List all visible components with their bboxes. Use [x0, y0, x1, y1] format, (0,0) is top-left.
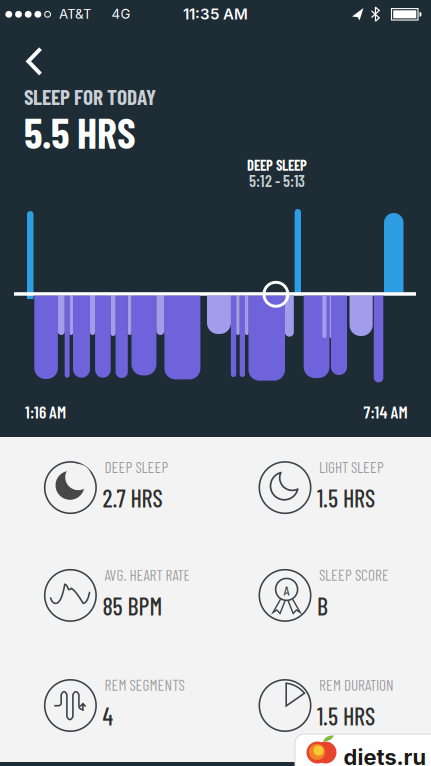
staticText: DEEP SLEEP	[247, 156, 307, 174]
staticText: SLEEP FOR TODAY	[24, 84, 156, 109]
staticText: REM DURATION	[319, 675, 394, 694]
staticText: diets.ru	[343, 744, 426, 766]
staticText: 5:12 - 5:13	[249, 171, 305, 190]
staticText: 1:16 AM	[25, 402, 66, 422]
staticText: 5.5 HRS	[24, 107, 136, 157]
staticText: A	[284, 582, 290, 598]
staticText: 2.7 HRS	[102, 484, 162, 512]
staticText: LIGHT SLEEP	[319, 458, 384, 476]
staticText: AVG. HEART RATE	[104, 565, 190, 584]
staticText: 4	[102, 701, 113, 730]
staticText: AT&T	[59, 6, 92, 22]
staticText: 1.5 HRS	[317, 701, 375, 730]
staticText: 4G	[111, 6, 130, 22]
staticText: 7:14 AM	[363, 402, 407, 422]
staticText: DEEP SLEEP	[104, 458, 168, 476]
staticText: REM SEGMENTS	[104, 675, 184, 694]
staticText: 1.5 HRS	[317, 484, 375, 512]
button[interactable]	[12, 39, 56, 83]
staticText: SLEEP SCORE	[319, 565, 389, 584]
staticText: B	[317, 591, 328, 620]
staticText: 85 BPM	[102, 591, 162, 620]
staticText: 11:35 AM	[183, 5, 248, 23]
